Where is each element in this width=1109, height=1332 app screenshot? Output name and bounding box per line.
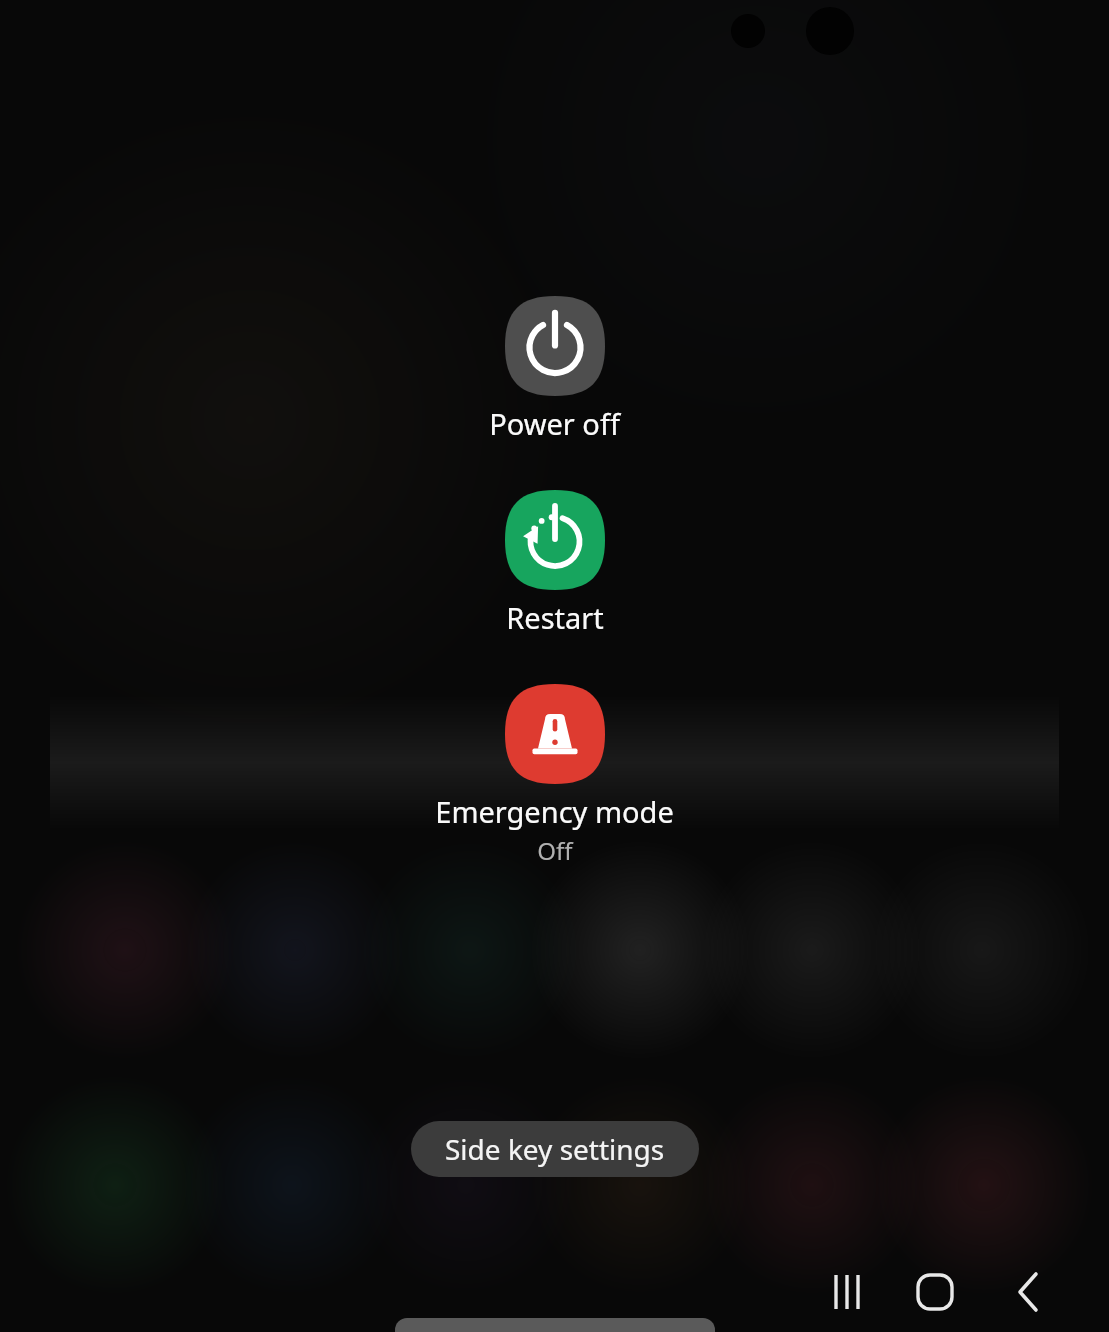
button[interactable]: Home	[907, 1264, 963, 1320]
button[interactable]: Emergency mode	[411, 684, 698, 867]
staticText: Side key settings	[445, 1130, 665, 1168]
staticText: Power off	[489, 404, 620, 443]
button[interactable]: Back	[995, 1264, 1051, 1320]
staticText: Restart	[506, 598, 604, 637]
staticText: Off	[537, 834, 573, 867]
button[interactable]: Power off	[465, 296, 644, 443]
button[interactable]: Side key settings	[411, 1121, 699, 1177]
button[interactable]: Recent apps	[819, 1264, 875, 1320]
staticText: Emergency mode	[435, 792, 674, 831]
button[interactable]: Restart	[481, 490, 629, 637]
